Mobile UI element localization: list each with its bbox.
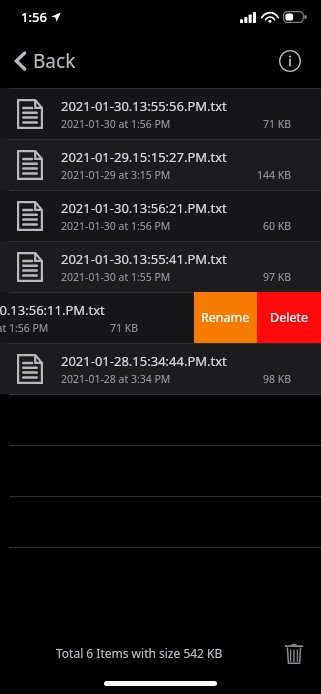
staticText: 2021-01-30 at 1:56 PM xyxy=(61,219,171,233)
staticText: Back xyxy=(33,48,76,74)
staticText: 1:56 xyxy=(21,8,47,26)
button[interactable]: 2021-01-30.13:56:11.PM.txt xyxy=(0,292,321,343)
button[interactable]: Back xyxy=(0,39,86,83)
staticText: 2021-01-29 at 3:15 PM xyxy=(61,168,171,182)
staticText: Rename xyxy=(201,309,250,326)
staticText: 144 KB xyxy=(256,168,291,182)
staticText: 2021-01-30 at 1:55 PM xyxy=(61,270,171,284)
button[interactable]: Delete all xyxy=(279,638,309,668)
staticText: 2021-01-30 at 1:56 PM xyxy=(0,321,49,335)
staticText: Total 6 Items with size 542 KB xyxy=(56,645,223,661)
staticText: 2021-01-30.13:56:21.PM.txt xyxy=(61,199,227,217)
button[interactable]: Rename xyxy=(194,292,257,343)
staticText: 2021-01-30.13:56:11.PM.txt xyxy=(0,301,105,319)
staticText: 71 KB xyxy=(110,321,139,335)
button[interactable]: Delete xyxy=(257,292,321,343)
staticText: 2021-01-28 at 3:34 PM xyxy=(61,372,171,386)
button[interactable]: 2021-01-29.15:15:27.PM.txt xyxy=(0,139,321,190)
staticText: 71 KB xyxy=(262,117,291,131)
button[interactable]: 2021-01-30.13:55:41.PM.txt xyxy=(0,241,321,292)
staticText: 2021-01-30.13:55:56.PM.txt xyxy=(61,97,227,115)
staticText: Delete xyxy=(270,309,309,326)
button[interactable]: 2021-01-30.13:56:21.PM.txt xyxy=(0,190,321,241)
staticText: 2021-01-28.15:34:44.PM.txt xyxy=(61,352,227,370)
staticText: 60 KB xyxy=(262,219,291,233)
staticText: 98 KB xyxy=(262,372,291,386)
staticText: 2021-01-30 at 1:56 PM xyxy=(61,117,171,131)
staticText: 2021-01-30.13:55:41.PM.txt xyxy=(61,250,227,268)
button[interactable]: Info xyxy=(275,46,305,76)
staticText: 97 KB xyxy=(262,270,291,284)
button[interactable]: 2021-01-30.13:55:56.PM.txt xyxy=(0,88,321,139)
button[interactable]: 2021-01-28.15:34:44.PM.txt xyxy=(0,343,321,394)
staticText: 2021-01-29.15:15:27.PM.txt xyxy=(61,148,227,166)
